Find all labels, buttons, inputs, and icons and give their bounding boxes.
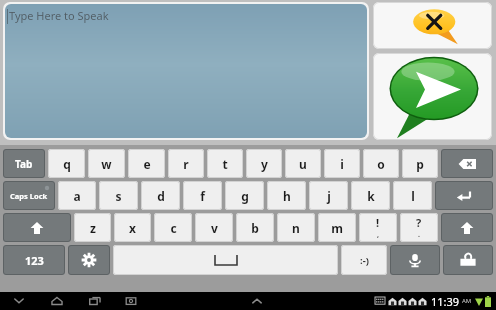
button[interactable]: j bbox=[309, 181, 348, 210]
staticText: z bbox=[90, 220, 96, 236]
button[interactable]: n bbox=[277, 213, 315, 242]
button[interactable]: t bbox=[207, 149, 243, 178]
button[interactable]: h bbox=[267, 181, 306, 210]
button[interactable]: Tab bbox=[3, 149, 45, 178]
staticText: 123 bbox=[25, 253, 44, 268]
staticText: v bbox=[211, 220, 218, 236]
button[interactable]: Settings bbox=[68, 245, 110, 275]
staticText: k bbox=[367, 188, 375, 204]
button[interactable]: c bbox=[154, 213, 192, 242]
button[interactable]: Speak bbox=[373, 53, 492, 140]
staticText: d bbox=[157, 188, 165, 204]
button[interactable]: o bbox=[363, 149, 399, 178]
staticText: b bbox=[251, 220, 259, 236]
staticText: w bbox=[101, 156, 112, 172]
staticText: Tab bbox=[15, 157, 33, 171]
button[interactable]: p bbox=[402, 149, 438, 178]
button[interactable]: Shift bbox=[3, 213, 71, 242]
staticText: o bbox=[377, 156, 385, 172]
staticText: l bbox=[411, 188, 415, 204]
button[interactable]: Recents bbox=[86, 293, 104, 309]
staticText: . bbox=[418, 230, 420, 240]
button[interactable]: Voice input bbox=[390, 245, 440, 275]
staticText: y bbox=[261, 156, 268, 172]
button[interactable]: Screenshot bbox=[122, 293, 140, 309]
button[interactable]: u bbox=[285, 149, 321, 178]
button[interactable]: Shift bbox=[441, 213, 493, 242]
staticText: n bbox=[292, 220, 300, 236]
button[interactable]: Caps Lock bbox=[3, 181, 55, 210]
staticText: s bbox=[115, 188, 122, 204]
button[interactable]: s bbox=[99, 181, 138, 210]
button[interactable]: v bbox=[195, 213, 233, 242]
staticText: 11:39 bbox=[431, 294, 460, 309]
button[interactable]: a bbox=[58, 181, 96, 210]
button[interactable]: f bbox=[183, 181, 222, 210]
staticText: j bbox=[327, 188, 331, 204]
button[interactable]: Type Here to Speak bbox=[5, 4, 367, 138]
staticText: f bbox=[200, 188, 205, 204]
button[interactable]: :-) bbox=[341, 245, 387, 275]
staticText: , bbox=[377, 230, 379, 240]
staticText: e bbox=[143, 156, 151, 172]
button[interactable]: k bbox=[351, 181, 390, 210]
button[interactable]: Home bbox=[48, 293, 66, 309]
staticText: :-) bbox=[360, 254, 369, 267]
button[interactable]: b bbox=[236, 213, 274, 242]
button[interactable]: i bbox=[324, 149, 360, 178]
staticText: g bbox=[241, 188, 249, 204]
staticText: q bbox=[63, 156, 71, 172]
button[interactable]: 123 bbox=[3, 245, 65, 275]
button[interactable]: y bbox=[246, 149, 282, 178]
staticText: Caps Lock bbox=[10, 191, 48, 201]
button[interactable]: Back bbox=[10, 293, 28, 309]
button[interactable]: l bbox=[393, 181, 432, 210]
button[interactable]: Attach bbox=[443, 245, 493, 275]
staticText: t bbox=[222, 156, 228, 172]
button[interactable]: Backspace bbox=[441, 149, 493, 178]
staticText: r bbox=[183, 156, 189, 172]
button[interactable]: Space bbox=[113, 245, 338, 275]
staticText: m bbox=[331, 220, 343, 236]
staticText: p bbox=[416, 156, 424, 172]
button[interactable]: m bbox=[318, 213, 356, 242]
button[interactable]: ! bbox=[359, 213, 397, 242]
staticText: ? bbox=[416, 215, 422, 230]
staticText: AM bbox=[462, 297, 472, 305]
button[interactable]: e bbox=[128, 149, 165, 178]
button[interactable]: g bbox=[225, 181, 264, 210]
button[interactable]: w bbox=[88, 149, 125, 178]
button[interactable]: d bbox=[141, 181, 180, 210]
button[interactable]: q bbox=[48, 149, 85, 178]
button[interactable]: Clear text bbox=[373, 2, 492, 49]
button[interactable]: z bbox=[74, 213, 111, 242]
staticText: ! bbox=[376, 215, 380, 230]
staticText: x bbox=[129, 220, 136, 236]
staticText: a bbox=[73, 188, 81, 204]
staticText: u bbox=[299, 156, 307, 172]
button[interactable]: ? bbox=[400, 213, 438, 242]
staticText: h bbox=[283, 188, 291, 204]
staticText: c bbox=[170, 220, 177, 236]
button[interactable]: x bbox=[114, 213, 151, 242]
button[interactable]: Enter bbox=[435, 181, 493, 210]
staticText: Type Here to Speak bbox=[9, 8, 109, 23]
button[interactable]: r bbox=[168, 149, 204, 178]
staticText: i bbox=[340, 156, 344, 172]
